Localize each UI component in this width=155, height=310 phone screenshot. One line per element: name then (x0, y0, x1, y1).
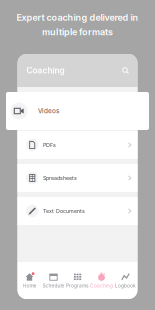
button[interactable]: Coaching (89, 271, 113, 289)
staticText: Expert coaching delivered in (16, 12, 138, 23)
button[interactable]: Logbook (113, 271, 137, 289)
staticText: Programs (66, 283, 89, 289)
staticText: PDFs (43, 142, 56, 148)
button[interactable]: Text Documents (17, 197, 137, 225)
button[interactable]: Spreadsheets (17, 164, 137, 192)
staticText: Home (22, 283, 36, 289)
staticText: Logbook (115, 283, 136, 289)
staticText: Coaching (26, 65, 64, 75)
button[interactable]: Search (119, 64, 131, 76)
staticText: Schedule (42, 283, 64, 289)
button[interactable]: PDFs (17, 131, 137, 159)
staticText: Coaching (90, 283, 113, 289)
staticText: Text Documents (43, 208, 85, 214)
button[interactable]: Home (17, 271, 41, 289)
button[interactable]: Programs (65, 271, 89, 289)
staticText: Videos (38, 107, 59, 115)
button[interactable]: Schedule (41, 271, 65, 289)
button[interactable]: Videos (6, 92, 149, 130)
staticText: Spreadsheets (43, 175, 77, 181)
staticText: multiple formats (42, 26, 113, 37)
